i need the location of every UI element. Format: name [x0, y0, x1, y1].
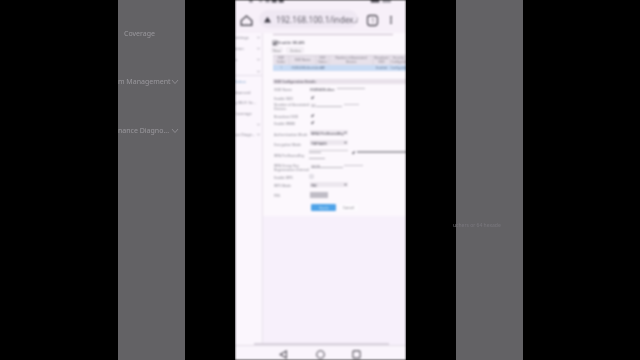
staticText: HG8546M-dbce(abcdef)	[289, 66, 327, 70]
staticText: WPA2 PreSharedKey	[311, 131, 344, 135]
staticText: 1	[371, 16, 375, 25]
button[interactable]: Advanced	[235, 88, 262, 97]
staticText: uration	[235, 46, 244, 51]
staticText: New	[273, 48, 281, 52]
button[interactable]: Cancel	[340, 204, 358, 211]
staticText: Delete	[290, 48, 301, 52]
staticText: WPA PreSharedKey	[274, 153, 305, 158]
button[interactable]: New	[272, 48, 282, 52]
button[interactable]: n Settings	[235, 33, 262, 42]
button[interactable]: Status	[235, 77, 262, 86]
staticText: 192.168.100.1/index.a	[276, 14, 358, 25]
button[interactable]: More options	[384, 13, 398, 27]
staticText: 32	[316, 66, 329, 70]
staticText: TKIP&AES	[311, 141, 327, 145]
staticText: WPA Group Key	[274, 163, 299, 168]
staticText: 3600	[311, 164, 321, 169]
button[interactable]: PBC	[310, 182, 348, 187]
staticText: Enable WPS	[274, 175, 293, 180]
staticText: Number of Associated	[274, 102, 310, 107]
staticText: SSID Index	[273, 56, 289, 64]
staticText: Status	[235, 79, 246, 84]
staticText: 32	[311, 103, 316, 108]
button[interactable]	[235, 67, 262, 76]
staticText: Coverage	[235, 111, 252, 116]
staticText: Devices	[274, 106, 287, 111]
staticText: Enable WLAN	[278, 40, 305, 45]
staticText: SSID Status	[316, 56, 329, 64]
staticText: Configured	[390, 66, 406, 70]
staticText: SSID Name	[274, 87, 292, 92]
staticText: Cancel	[343, 205, 355, 210]
button[interactable]: Delete	[287, 48, 303, 52]
staticText: Security Configurat	[390, 56, 406, 64]
staticText: nance Diagno...	[118, 126, 170, 136]
button[interactable]: ters	[235, 55, 262, 64]
button[interactable]: Coverage	[235, 109, 262, 118]
staticText: PIN	[274, 193, 280, 198]
staticText: SSID Name	[289, 58, 316, 62]
staticText: Enable WMM	[274, 121, 295, 126]
button[interactable]: Home	[239, 13, 254, 28]
staticText: Encryption Mode	[274, 142, 302, 147]
staticText: Enabled	[373, 66, 390, 70]
staticText: Enable SSID	[274, 96, 293, 101]
button[interactable]: asy Wi-Fi Se...	[235, 98, 262, 107]
staticText: m Management	[235, 122, 256, 127]
button[interactable]: Back	[279, 350, 288, 359]
staticText: 1	[273, 66, 289, 70]
staticText: SSID Configuration Details	[274, 80, 316, 84]
staticText: WPS Mode	[274, 183, 292, 188]
staticText: PBC	[311, 183, 318, 187]
staticText: Authentication Mode	[274, 132, 308, 137]
staticText: ters	[235, 57, 238, 62]
button[interactable]: Home	[316, 350, 325, 359]
staticText: Advanced	[235, 90, 251, 95]
staticText: n Settings	[235, 35, 249, 40]
button[interactable]: ance Diagn...	[235, 130, 262, 139]
staticText: HG8546M-dbce	[310, 87, 335, 91]
button[interactable]: Tabs	[367, 15, 378, 26]
staticText: uchers or 64 hexade	[453, 222, 501, 229]
button[interactable]: Recent apps	[352, 350, 361, 359]
staticText: Broadcast SSID	[373, 56, 390, 64]
staticText: Broadcast SSID	[274, 114, 299, 119]
staticText: Apply	[319, 205, 329, 210]
staticText: ance Diagn...	[235, 132, 256, 137]
button[interactable]: m Management	[235, 120, 262, 129]
button[interactable]: 192.168.100.1/index.a	[259, 10, 358, 28]
button[interactable]: TKIP&AES	[310, 140, 348, 145]
button[interactable]: WPA2 PreSharedKey	[310, 130, 348, 135]
staticText: asy Wi-Fi Se...	[235, 100, 257, 105]
button[interactable]: Apply	[311, 204, 336, 211]
staticText: Coverage	[124, 29, 155, 39]
button[interactable]	[310, 192, 328, 198]
staticText: m Management	[118, 77, 171, 87]
staticText: Number of Associated Devices	[329, 56, 373, 64]
button[interactable]: uration	[235, 44, 262, 53]
staticText: Regeneration Interval	[274, 167, 309, 172]
